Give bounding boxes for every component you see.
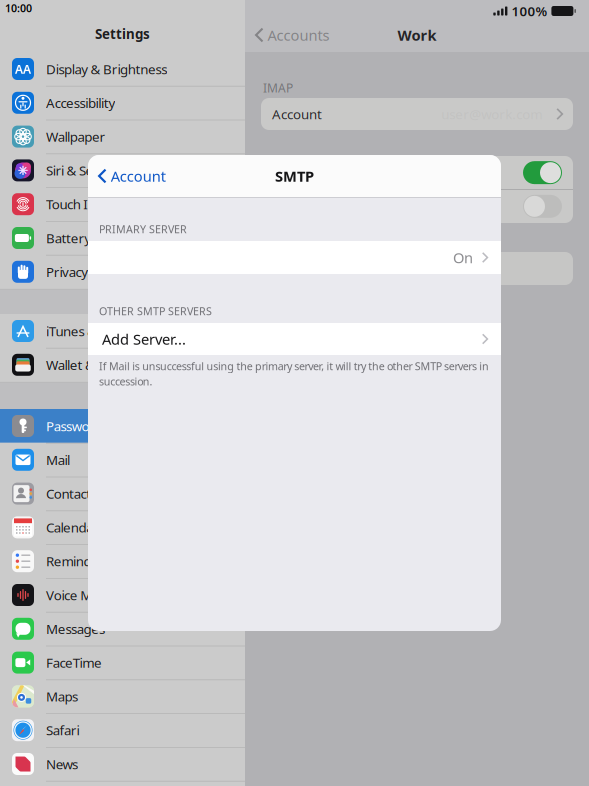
staticText: 100%	[511, 2, 547, 20]
staticText: OTHER SMTP SERVERS	[99, 304, 212, 318]
button[interactable]: Messages	[0, 612, 245, 646]
staticText: Wallpaper	[46, 128, 106, 145]
button[interactable]: Touch ID & Passcode	[0, 187, 245, 221]
staticText: succession.	[99, 374, 152, 388]
button[interactable]: Passwords & Accounts	[0, 409, 245, 443]
staticText: Battery	[46, 229, 91, 247]
staticText: Display & Brightness	[46, 60, 167, 78]
staticText: Siri & Search	[46, 161, 118, 179]
staticText: SMTP	[275, 166, 314, 186]
staticText: Maps	[46, 687, 78, 705]
staticText: Messages	[46, 620, 105, 638]
button[interactable]: Contacts	[0, 477, 245, 511]
button[interactable]: Maps	[0, 679, 245, 713]
button[interactable]: On	[88, 241, 501, 274]
staticText: Accessibility	[46, 94, 115, 112]
staticText: Calendar	[46, 518, 99, 536]
staticText: Work	[397, 25, 436, 45]
staticText: Touch ID & Passcode	[46, 195, 168, 213]
staticText: Reminders	[46, 552, 111, 570]
staticText: 10:00	[5, 1, 32, 15]
staticText: If Mail is unsuccessful using the primar…	[99, 359, 489, 373]
button[interactable]: FaceTime	[0, 646, 245, 680]
staticText: Passwords & Accounts	[46, 417, 176, 435]
button[interactable]: Voice Memos	[0, 578, 245, 612]
button[interactable]: Safari	[0, 713, 245, 747]
staticText: PRIMARY SERVER	[99, 222, 187, 236]
staticText: On	[453, 248, 473, 267]
staticText: Privacy	[46, 263, 88, 281]
button[interactable]: Reminders	[0, 544, 245, 578]
staticText: Wallet & Apple Pay	[46, 356, 156, 374]
staticText: AA	[15, 61, 31, 77]
button[interactable]: Account	[88, 155, 174, 197]
staticText: Add Server...	[102, 329, 186, 349]
staticText: Safari	[46, 721, 79, 739]
button[interactable]: Siri & Search	[0, 153, 245, 187]
staticText: Mail	[46, 451, 70, 469]
button[interactable]: iTunes & App Store	[0, 314, 245, 348]
staticText: Settings	[95, 25, 150, 43]
staticText: iTunes & App Store	[46, 322, 158, 340]
button[interactable]: Accessibility	[0, 86, 245, 120]
staticText: Account	[111, 166, 166, 186]
staticText: Account	[272, 105, 322, 123]
staticText: Accounts	[268, 25, 330, 45]
button[interactable]: Account	[261, 98, 573, 130]
button[interactable]: Wallet & Apple Pay	[0, 348, 245, 382]
button[interactable]: AA	[0, 52, 245, 86]
staticText: News	[46, 755, 78, 773]
button[interactable]: Battery	[0, 221, 245, 255]
button[interactable]: News	[0, 747, 245, 781]
button[interactable]: Calendar	[0, 510, 245, 544]
button[interactable]: Privacy	[0, 255, 245, 289]
button[interactable]: Mail	[0, 443, 245, 477]
staticText: Contacts	[46, 485, 97, 502]
button[interactable]: Accounts	[245, 21, 338, 49]
staticText: IMAP	[263, 80, 293, 96]
button[interactable]: Add Server...	[88, 323, 501, 355]
staticText: FaceTime	[46, 654, 102, 671]
staticText: Voice Memos	[46, 586, 125, 604]
button[interactable]: Wallpaper	[0, 120, 245, 154]
